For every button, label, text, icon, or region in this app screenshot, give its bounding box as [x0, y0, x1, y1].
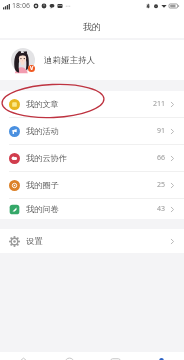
button[interactable]: 设置	[0, 229, 184, 253]
staticText: 43	[157, 204, 166, 214]
staticText: 66	[157, 153, 166, 163]
staticText: 迪莉娅主持人	[44, 55, 95, 66]
staticText: 我的圈子	[26, 180, 59, 190]
button[interactable]: 首页	[0, 352, 46, 360]
button[interactable]: V	[0, 40, 184, 80]
button[interactable]: 我的云协作	[0, 145, 184, 171]
staticText: 我的文章	[26, 99, 59, 109]
staticText: 我的	[83, 21, 101, 32]
button[interactable]: 发现	[46, 352, 92, 360]
button[interactable]: 我的问卷	[0, 199, 184, 219]
button[interactable]: 我的活动	[0, 118, 184, 144]
staticText: 91	[157, 126, 166, 136]
staticText: 我的云协作	[26, 153, 67, 163]
staticText: V	[30, 65, 34, 72]
button[interactable]: 我的圈子	[0, 172, 184, 198]
staticText: 25	[157, 180, 166, 190]
staticText: 我的问卷	[26, 204, 59, 214]
button[interactable]: 我的文章	[0, 91, 184, 117]
staticText: 211	[153, 99, 166, 109]
staticText: 设置	[26, 236, 43, 246]
staticText: 18:06	[12, 1, 30, 11]
staticText: 我的活动	[26, 126, 59, 136]
button[interactable]: 我的	[138, 352, 184, 360]
button[interactable]: 消息	[92, 352, 138, 360]
